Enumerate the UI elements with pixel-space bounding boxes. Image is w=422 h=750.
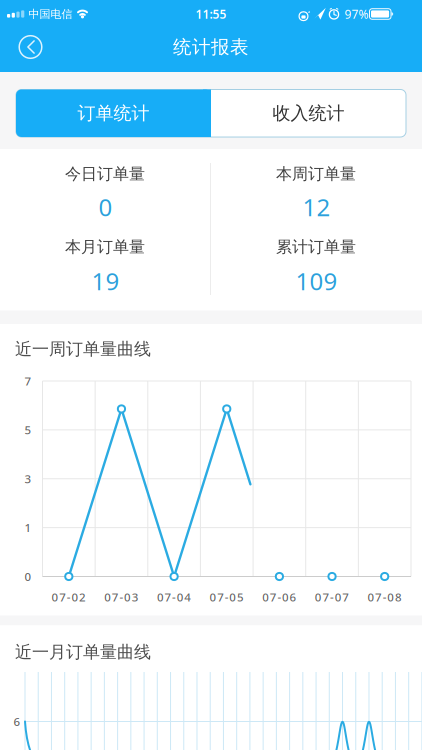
staticText: 109 <box>295 265 337 297</box>
staticText: 07-02 <box>52 589 86 605</box>
staticText: 0 <box>24 569 31 584</box>
staticText: 统计报表 <box>173 35 249 59</box>
staticText: 3 <box>24 471 31 487</box>
staticText: 07-05 <box>210 589 244 605</box>
staticText: 7 <box>24 373 31 389</box>
staticText: 收入统计 <box>272 102 344 125</box>
staticText: 19 <box>91 265 119 297</box>
button[interactable]: 收入统计 <box>211 89 406 137</box>
staticText: 订单统计 <box>77 102 149 125</box>
staticText: 本周订单量 <box>276 164 356 184</box>
staticText: 07-04 <box>157 589 191 605</box>
staticText: 中国电信 <box>28 7 72 21</box>
button[interactable]: Back <box>10 27 50 67</box>
staticText: 0 <box>98 191 112 223</box>
staticText: 6 <box>13 714 20 729</box>
staticText: 本月订单量 <box>65 237 145 257</box>
staticText: 11:55 <box>195 6 226 22</box>
staticText: 累计订单量 <box>276 237 356 257</box>
staticText: 07-03 <box>104 589 139 605</box>
button[interactable]: 订单统计 <box>16 89 211 137</box>
staticText: 97% <box>344 6 368 22</box>
staticText: 近一月订单量曲线 <box>15 641 151 663</box>
staticText: 5 <box>24 422 31 438</box>
staticText: 07-07 <box>315 589 349 605</box>
staticText: 12 <box>302 191 330 223</box>
staticText: 07-06 <box>262 589 297 605</box>
staticText: 今日订单量 <box>65 164 145 184</box>
staticText: 07-08 <box>367 589 402 605</box>
staticText: 1 <box>24 520 31 535</box>
staticText: 近一周订单量曲线 <box>15 338 151 360</box>
